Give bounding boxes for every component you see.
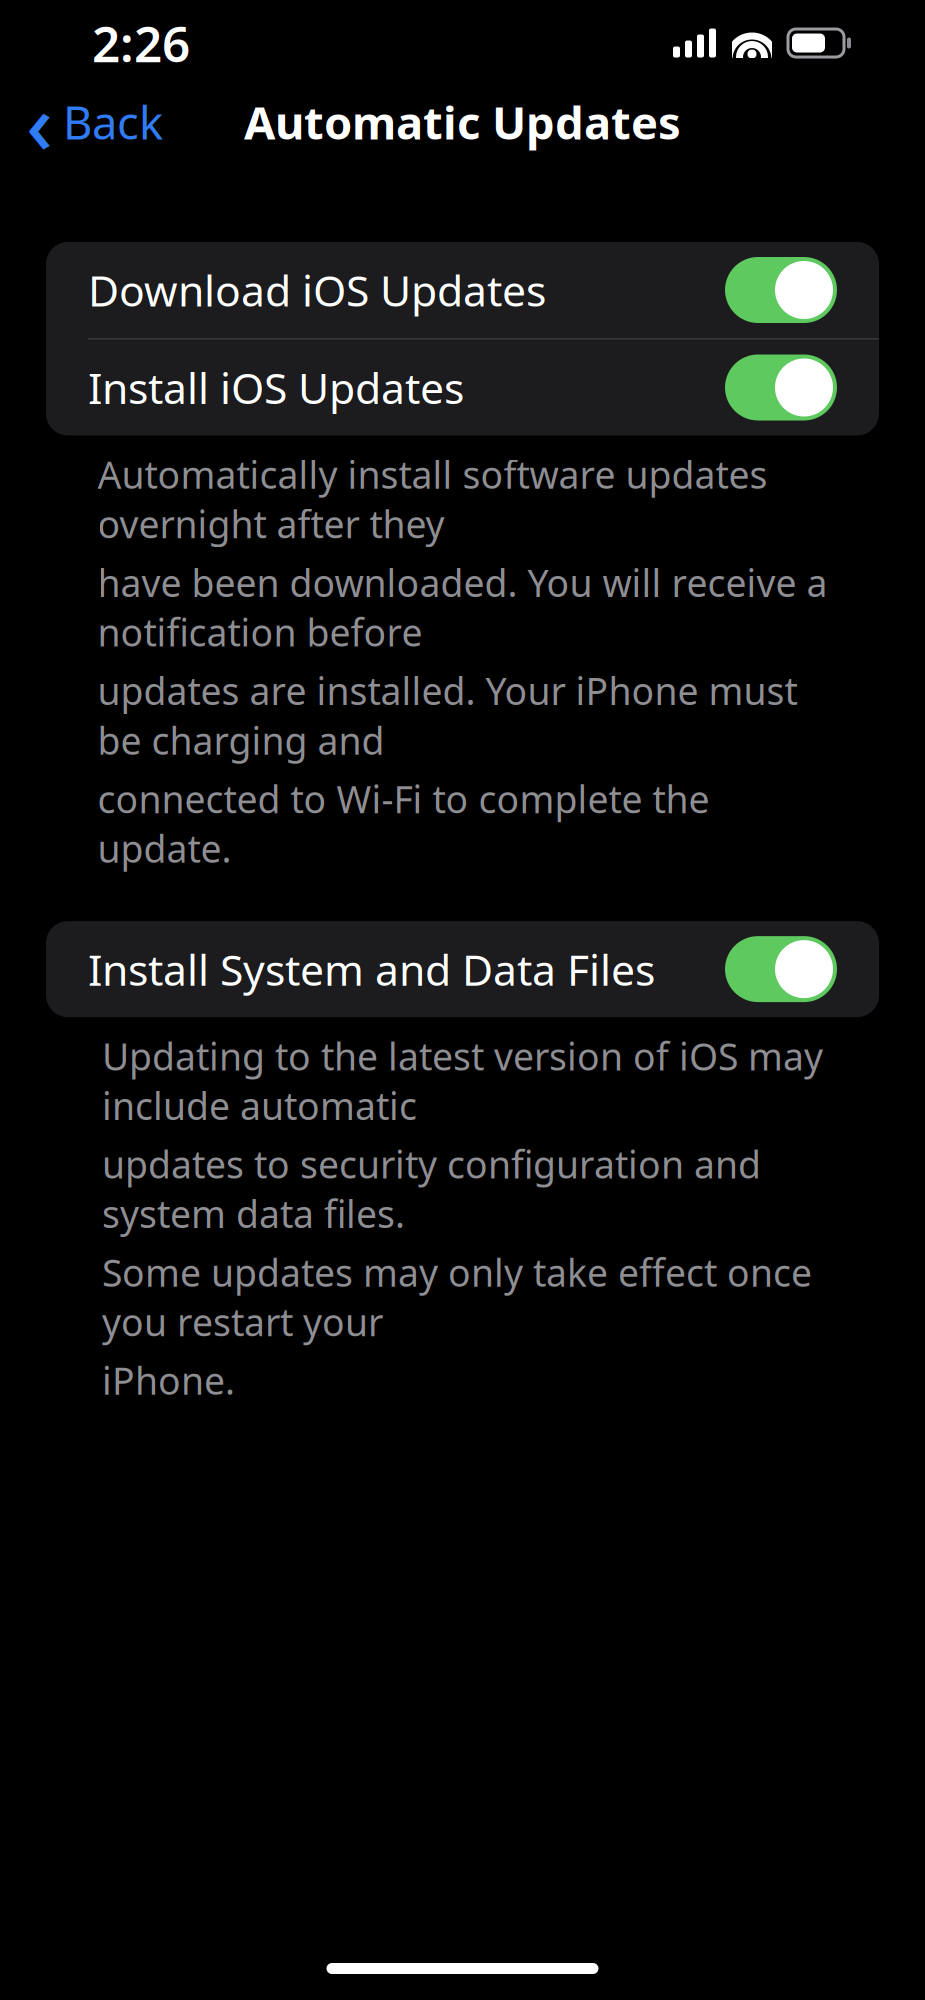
staticText: Updating to the latest version of iOS ma… [102,1031,823,1130]
button[interactable]: Download iOS Updates [46,242,879,338]
staticText: Download iOS Updates [88,262,546,318]
staticText: updates to security configuration and sy… [102,1139,761,1238]
staticText: connected to Wi-Fi to complete the updat… [97,774,709,873]
staticText: Install iOS Updates [88,359,464,416]
staticText: Automatic Updates [244,92,681,152]
button[interactable]: Install iOS Updates [46,339,879,435]
staticText: Install System and Data Files [88,941,655,997]
staticText: have been downloaded. You will receive a… [97,558,827,657]
staticText: updates are installed. Your iPhone must … [97,666,797,765]
button[interactable]: ‹ [6,89,183,155]
staticText: Automatically install software updates o… [97,449,767,549]
staticText: ‹ [26,67,53,177]
button[interactable]: Install System and Data Files [46,921,879,1017]
staticText: 2:26 [92,10,190,76]
staticText: Some updates may only take effect once y… [102,1247,812,1347]
staticText: iPhone. [102,1356,235,1405]
staticText: Back [63,92,163,152]
